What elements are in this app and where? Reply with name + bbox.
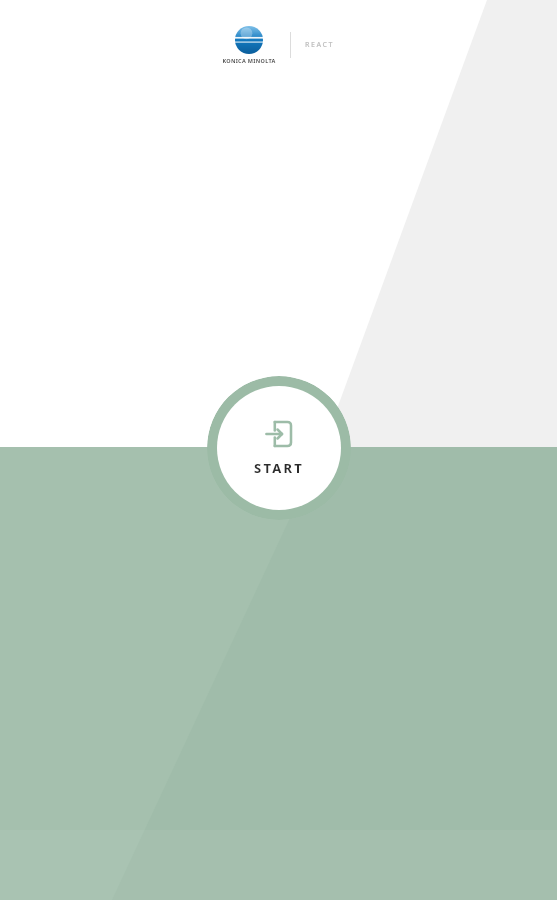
staticText: START <box>254 459 304 477</box>
staticText: KONICA MINOLTA <box>222 57 276 64</box>
staticText: REACT <box>305 40 335 50</box>
other: Start <box>264 419 294 449</box>
button[interactable]: Start <box>207 376 351 520</box>
